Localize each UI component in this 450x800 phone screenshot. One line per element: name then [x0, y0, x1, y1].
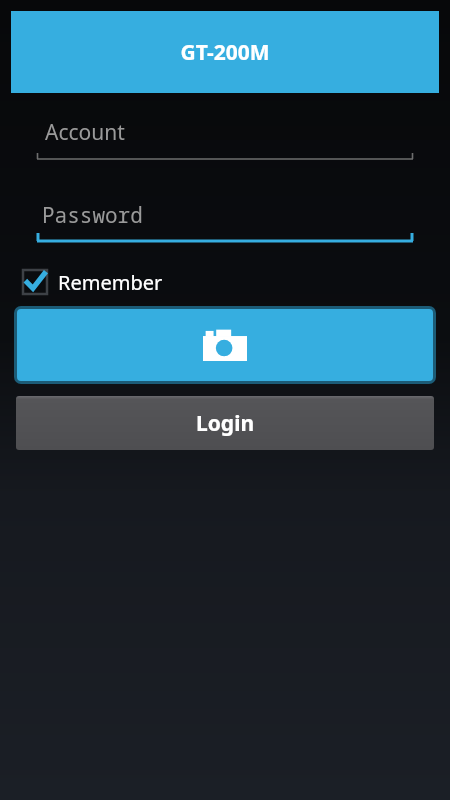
- button[interactable]: Take photo: [17, 309, 433, 381]
- staticText: GT-200M: [180, 38, 270, 67]
- button[interactable]: Account: [36, 118, 414, 160]
- staticText: Password: [42, 201, 143, 230]
- button[interactable]: Login: [16, 396, 434, 450]
- staticText: Login: [196, 409, 255, 438]
- button[interactable]: Remember: [22, 265, 163, 299]
- staticText: Account: [45, 118, 125, 147]
- staticText: Remember: [58, 269, 163, 296]
- button[interactable]: Password: [36, 201, 414, 243]
- button[interactable]: GT-200M: [11, 11, 439, 93]
